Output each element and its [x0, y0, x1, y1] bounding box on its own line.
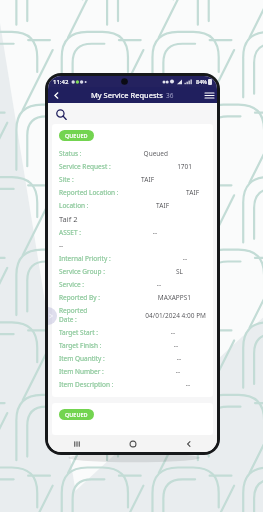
staticText: 11:42 — [53, 78, 69, 86]
staticText: Reported Location : — [59, 188, 119, 197]
button[interactable]: Search — [52, 105, 70, 123]
button[interactable]: Open drawer — [48, 307, 57, 325]
staticText: My Service Requests — [91, 90, 163, 100]
staticText: Service : — [59, 280, 85, 289]
staticText: -- — [170, 328, 175, 337]
staticText: ASSET : — [59, 228, 81, 237]
button[interactable]: Recents — [48, 435, 105, 452]
staticText: Item Description : — [59, 380, 114, 389]
button[interactable]: QUEUED — [52, 124, 213, 397]
staticText: Status : — [59, 149, 82, 158]
button[interactable]: QUEUED — [52, 403, 213, 435]
staticText: Item Number : — [59, 367, 104, 376]
staticText: -- — [175, 367, 180, 376]
staticText: QUEUED — [65, 411, 88, 418]
button[interactable]: Back — [48, 87, 64, 103]
staticText: QUEUED — [65, 132, 88, 139]
staticText: -- — [173, 341, 178, 350]
staticText: Reported By : — [59, 293, 100, 302]
staticText: SL — [176, 267, 183, 276]
button[interactable]: Menu — [201, 87, 217, 103]
staticText: 04/01/2024 4:00 PM — [145, 311, 206, 320]
staticText: Internal Priority : — [59, 254, 111, 263]
button[interactable]: Back — [161, 435, 217, 452]
staticText: -- — [185, 380, 190, 389]
staticText: Location : — [59, 201, 89, 210]
staticText: 36 — [166, 91, 174, 100]
staticText: Target Start : — [59, 328, 99, 337]
staticText: -- — [156, 280, 161, 289]
staticText: Reported Date : — [59, 306, 102, 324]
staticText: -- — [182, 254, 187, 263]
staticText: TAIF — [141, 175, 154, 184]
staticText: Service Request : — [59, 162, 111, 171]
staticText: Item Quantity : — [59, 354, 105, 363]
staticText: TAIF — [186, 188, 199, 197]
button[interactable]: Home — [105, 435, 161, 452]
staticText: 1701 — [177, 162, 192, 171]
staticText: -- — [176, 354, 181, 363]
staticText: Target Finish : — [59, 341, 102, 350]
staticText: Service Group : — [59, 267, 106, 276]
staticText: -- — [59, 241, 64, 250]
staticText: MAXAPPS1 — [157, 293, 191, 302]
staticText: Taif 2 — [59, 214, 78, 224]
staticText: TAIF — [156, 201, 169, 210]
staticText: Queued — [143, 149, 168, 158]
staticText: -- — [152, 228, 157, 237]
staticText: Site : — [59, 175, 74, 184]
staticText: 84% — [196, 78, 207, 85]
